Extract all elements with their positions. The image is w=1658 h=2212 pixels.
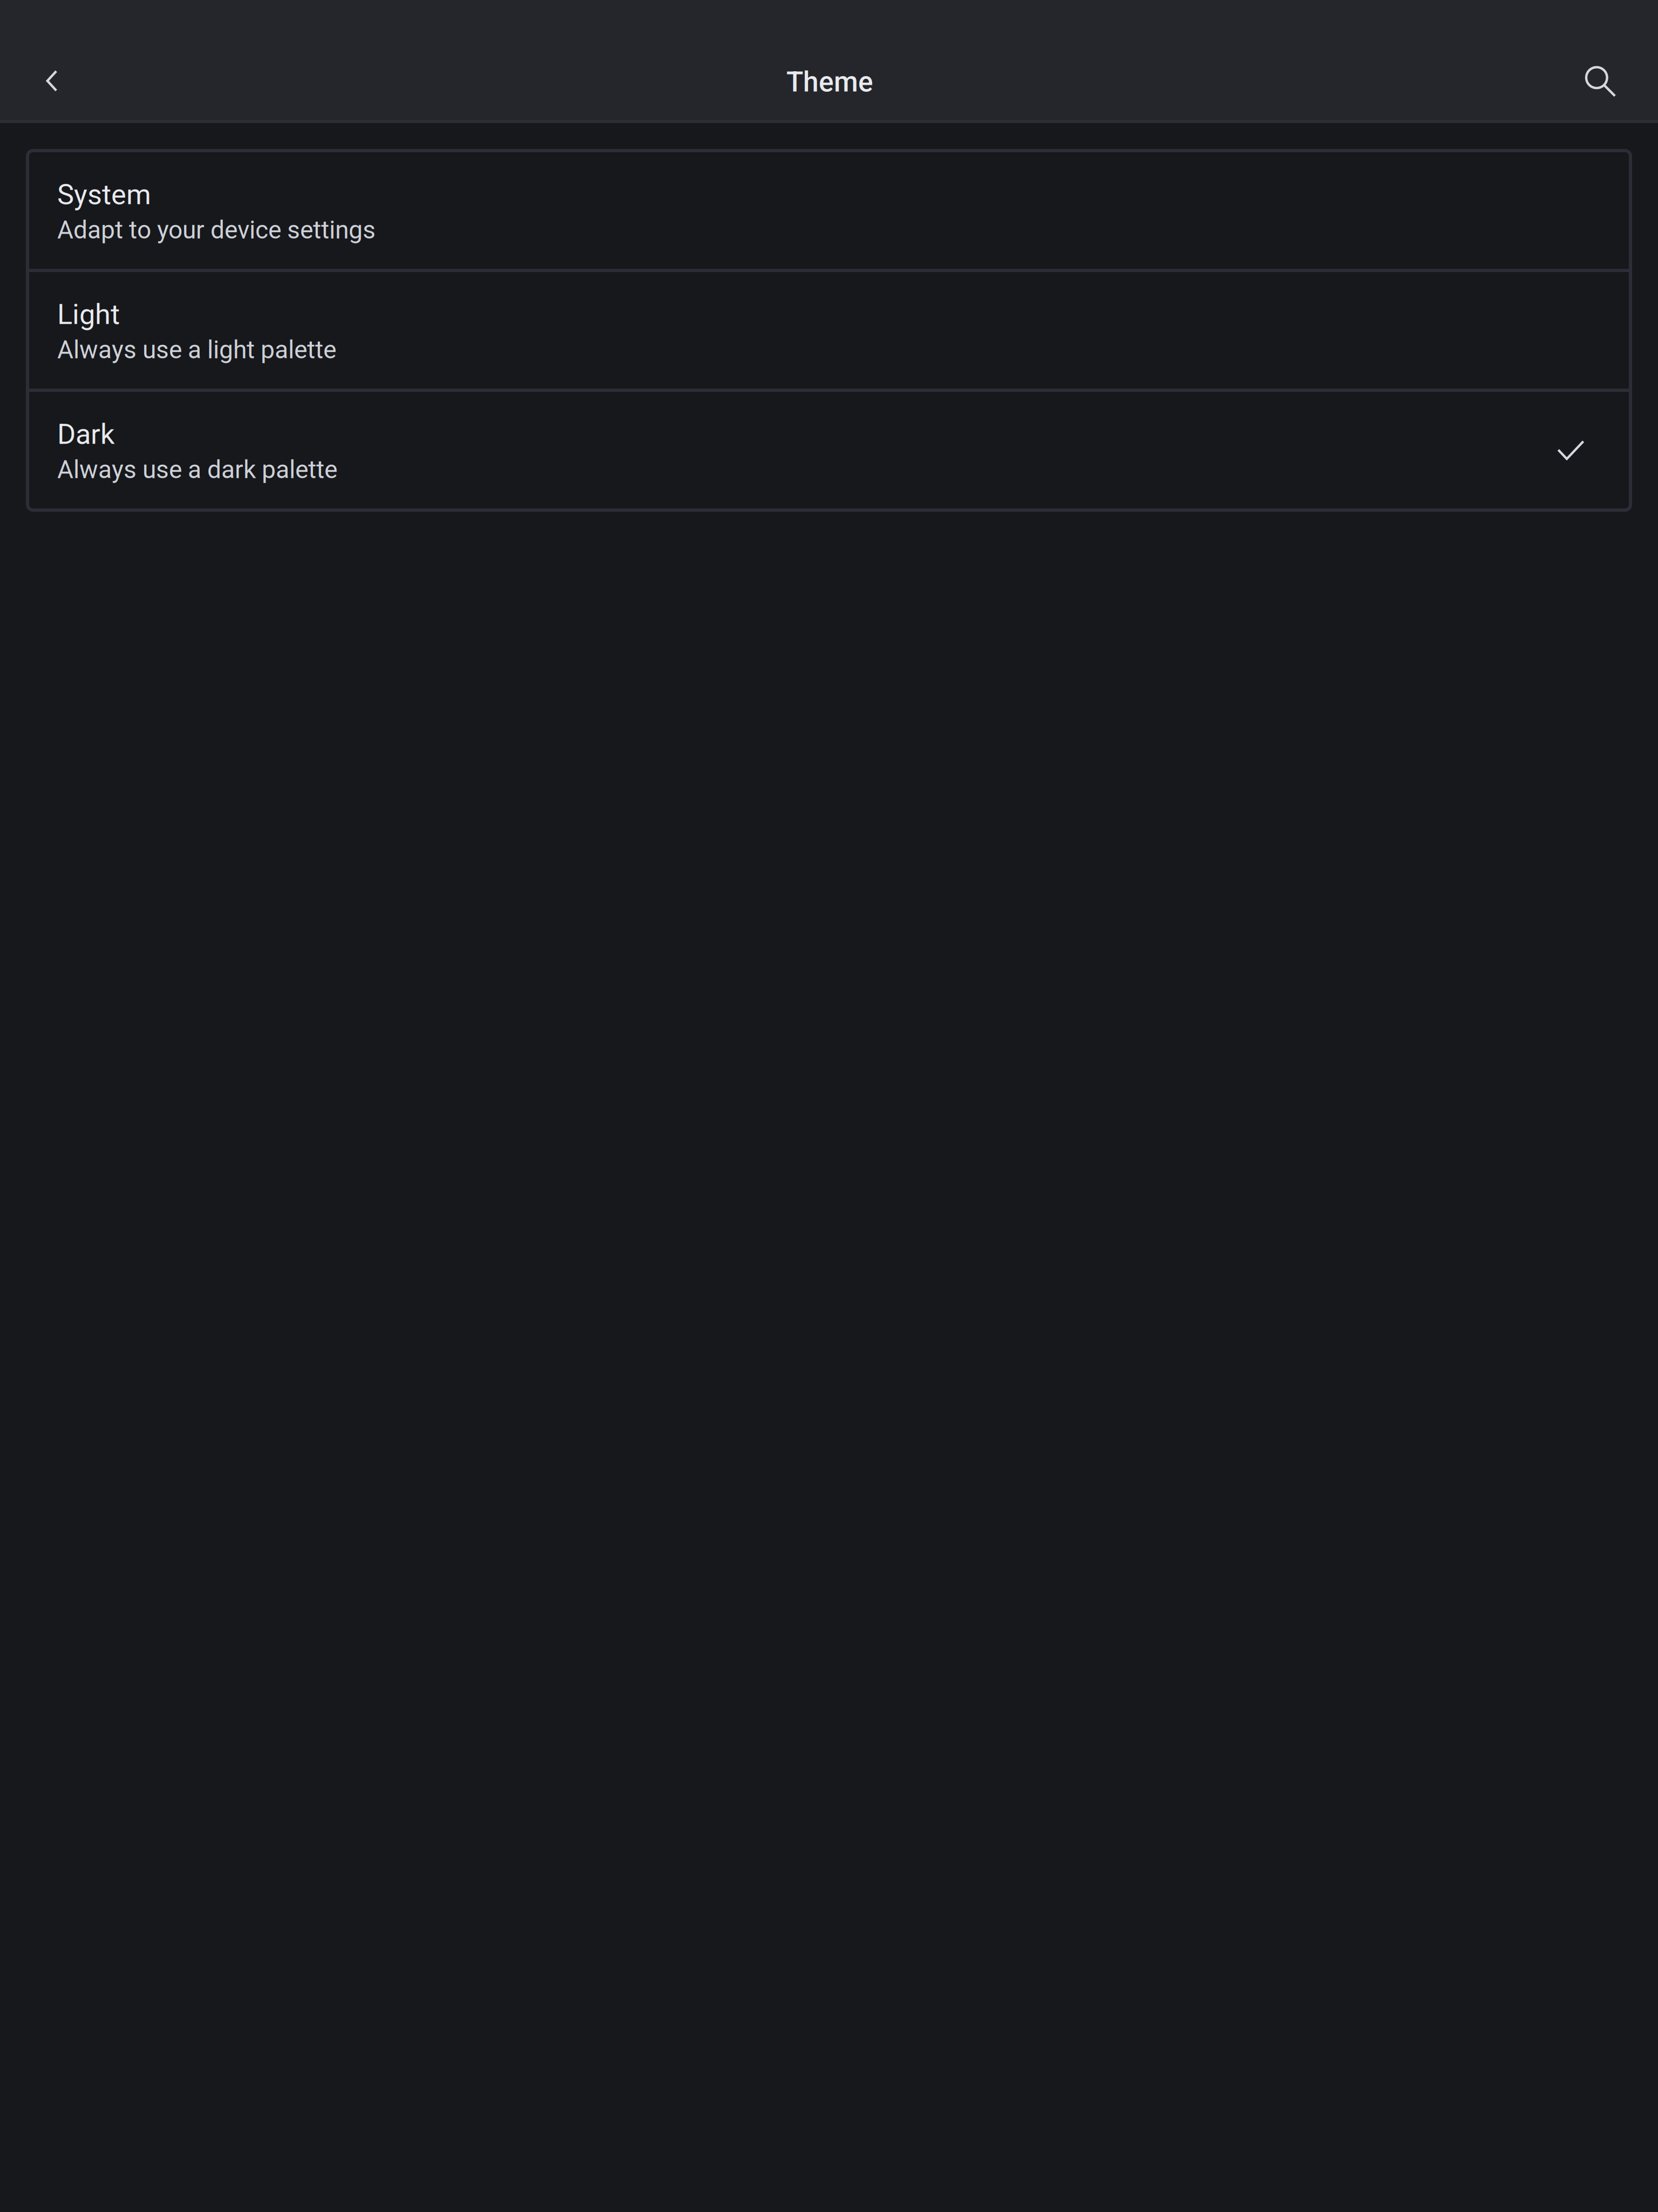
button[interactable]: Dark	[29, 392, 1629, 508]
button[interactable]: System	[29, 152, 1629, 269]
staticText: Light	[57, 298, 120, 331]
staticText: Theme	[786, 66, 873, 98]
staticText: System	[57, 178, 151, 211]
staticText: Always use a light palette	[57, 335, 336, 364]
button[interactable]: Search	[1582, 63, 1621, 102]
staticText: Adapt to your device settings	[57, 215, 376, 245]
button[interactable]: Back	[26, 62, 65, 100]
staticText: Always use a dark palette	[57, 455, 337, 484]
button[interactable]: Light	[29, 272, 1629, 389]
staticText: Dark	[57, 418, 114, 451]
